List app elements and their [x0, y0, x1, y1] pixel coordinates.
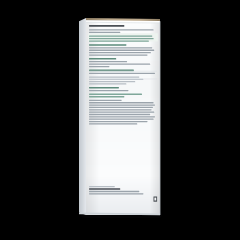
button[interactable]: Product packaging photo	[0, 0, 240, 240]
